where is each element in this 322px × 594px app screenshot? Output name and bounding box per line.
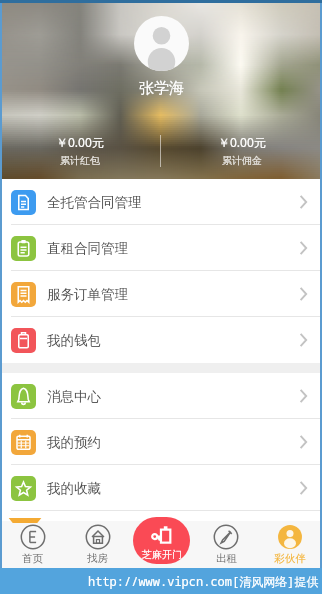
staticText: 服务订单管理 (47, 286, 128, 303)
staticText: 首页 (22, 552, 43, 565)
staticText: 张学海 (139, 79, 184, 98)
staticText: 我的收藏 (47, 480, 101, 497)
button[interactable]: 彩伙伴 (258, 521, 322, 568)
staticText: 全托管合同管理 (47, 194, 142, 211)
staticText: 彩伙伴 (274, 552, 306, 565)
button[interactable]: 我的收藏 (0, 465, 322, 511)
staticText: 出租 (216, 552, 237, 565)
staticText: 累计红包 (60, 154, 100, 167)
staticText: 直租合同管理 (47, 240, 128, 257)
staticText: 找房 (87, 552, 108, 565)
staticText: ￥0.00元 (218, 134, 266, 150)
button[interactable]: 首页 (0, 521, 65, 568)
button[interactable]: 找房 (65, 521, 130, 568)
staticText: 我的钱包 (47, 332, 101, 349)
button[interactable]: 直租合同管理 (0, 225, 322, 271)
button[interactable]: 出租 (194, 521, 258, 568)
staticText: http://www.vipcn.com[清风网络]提供 (88, 573, 319, 589)
button[interactable]: 全托管合同管理 (0, 179, 322, 225)
staticText: 我的预约 (47, 434, 101, 451)
staticText: ￥0.00元 (56, 134, 104, 150)
staticText: 芝麻开门 (142, 548, 182, 561)
button[interactable]: 我的预约 (0, 419, 322, 465)
button[interactable]: 消息中心 (0, 373, 322, 419)
button[interactable]: 服务订单管理 (0, 271, 322, 317)
staticText: 消息中心 (47, 388, 101, 405)
staticText: 累计佣金 (222, 154, 262, 167)
button[interactable]: 我的钱包 (0, 317, 322, 363)
button[interactable]: 芝麻开门 (133, 517, 190, 564)
